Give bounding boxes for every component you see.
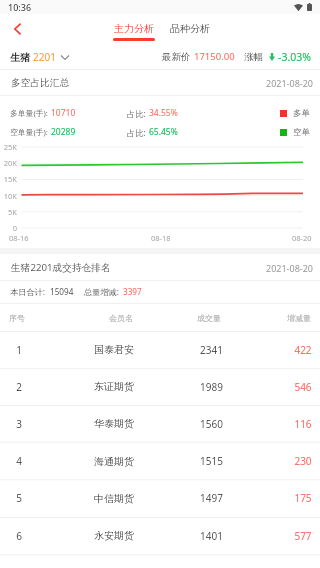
staticText: 中信期货 bbox=[94, 492, 134, 505]
staticText: 生猪2201成交持仓排名 bbox=[11, 261, 111, 274]
staticText: 总量增减: bbox=[84, 286, 119, 297]
staticText: -3.03% bbox=[278, 50, 311, 64]
staticText: 序号 bbox=[9, 313, 25, 323]
staticText: 175 bbox=[294, 491, 312, 505]
staticText: 5K bbox=[0, 207, 17, 217]
staticText: 华泰期货 bbox=[94, 417, 134, 430]
staticText: 3 bbox=[16, 417, 22, 431]
staticText: 08-16 bbox=[9, 233, 29, 243]
staticText: 品种分析 bbox=[170, 22, 210, 35]
staticText: 10710 bbox=[51, 107, 76, 119]
staticText: 多空占比汇总 bbox=[11, 77, 70, 89]
staticText: 1989 bbox=[200, 380, 223, 394]
button[interactable]: 1 bbox=[0, 331, 320, 368]
staticText: 2 bbox=[16, 380, 22, 394]
staticText: 20289 bbox=[51, 126, 76, 138]
staticText: 多单 bbox=[293, 108, 310, 119]
staticText: 1 bbox=[16, 343, 22, 357]
staticText: 1401 bbox=[200, 529, 223, 543]
staticText: 空单量(手): bbox=[10, 127, 48, 138]
staticText: 15K bbox=[0, 174, 17, 184]
staticText: 4 bbox=[16, 454, 22, 468]
staticText: 最新价 bbox=[162, 51, 191, 63]
staticText: 2341 bbox=[200, 343, 223, 357]
staticText: 主力分析 bbox=[114, 22, 154, 35]
staticText: 230 bbox=[294, 454, 312, 468]
staticText: 2201 bbox=[33, 50, 56, 64]
staticText: 3397 bbox=[123, 286, 142, 297]
staticText: 本日合计: bbox=[10, 286, 45, 297]
button[interactable]: 生猪 bbox=[10, 50, 69, 64]
staticText: 增减量 bbox=[287, 313, 311, 323]
button[interactable]: 4 bbox=[0, 442, 320, 480]
staticText: 东证期货 bbox=[94, 380, 134, 393]
staticText: 08-18 bbox=[151, 233, 171, 243]
staticText: 国泰君安 bbox=[94, 343, 134, 356]
staticText: 占比: bbox=[127, 108, 146, 119]
staticText: 116 bbox=[294, 417, 312, 431]
staticText: 生猪 bbox=[10, 51, 30, 64]
staticText: 17150.00 bbox=[194, 50, 235, 63]
button[interactable]: 6 bbox=[0, 517, 320, 554]
staticText: 成交量 bbox=[197, 313, 221, 323]
staticText: 1560 bbox=[200, 417, 223, 431]
staticText: 1515 bbox=[200, 454, 223, 468]
staticText: 空单 bbox=[293, 127, 310, 138]
staticText: 占比: bbox=[127, 127, 146, 138]
staticText: 20K bbox=[0, 158, 17, 168]
staticText: 涨幅 bbox=[244, 51, 263, 63]
staticText: 2021-08-20 bbox=[266, 262, 313, 274]
staticText: 6 bbox=[16, 529, 22, 543]
staticText: 15094 bbox=[50, 286, 74, 297]
staticText: 永安期货 bbox=[94, 529, 134, 542]
staticText: 1497 bbox=[200, 491, 223, 505]
staticText: 10:36 bbox=[8, 1, 32, 13]
button[interactable]: 2 bbox=[0, 368, 320, 405]
staticText: 10K bbox=[0, 191, 17, 201]
staticText: 海通期货 bbox=[94, 455, 134, 468]
button[interactable]: 品种分析 bbox=[166, 14, 214, 43]
staticText: 0 bbox=[0, 223, 17, 233]
staticText: 会员名 bbox=[109, 313, 133, 323]
staticText: 546 bbox=[294, 380, 312, 394]
staticText: 2021-08-20 bbox=[266, 77, 313, 89]
button[interactable]: 主力分析 bbox=[110, 14, 158, 43]
staticText: 577 bbox=[294, 529, 312, 543]
button[interactable]: 3 bbox=[0, 405, 320, 442]
staticText: 08-20 bbox=[292, 233, 312, 243]
staticText: 34.55% bbox=[149, 107, 178, 119]
button[interactable]: Back bbox=[0, 14, 34, 43]
staticText: 5 bbox=[16, 491, 22, 505]
staticText: 多单量(手): bbox=[10, 108, 48, 119]
staticText: 422 bbox=[294, 343, 312, 357]
button[interactable]: 5 bbox=[0, 479, 320, 517]
staticText: 65.45% bbox=[149, 126, 178, 138]
staticText: 25K bbox=[0, 142, 17, 152]
